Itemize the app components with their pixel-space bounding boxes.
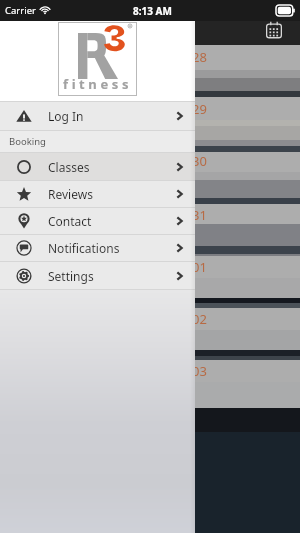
staticText: 29: [192, 100, 207, 118]
staticText: 31: [192, 206, 207, 224]
staticText: Contact: [48, 213, 92, 229]
staticText: Carrier: [5, 4, 36, 17]
button[interactable]: Notifications: [0, 235, 195, 261]
button[interactable]: Log In: [0, 102, 195, 130]
staticText: Reviews: [48, 186, 93, 202]
staticText: Log In: [48, 108, 84, 124]
button[interactable]: Settings: [0, 262, 195, 289]
staticText: 28: [192, 48, 207, 66]
staticText: 30: [192, 152, 207, 170]
button[interactable]: Reviews: [0, 181, 195, 207]
staticText: Booking: [9, 135, 46, 148]
staticText: Settings: [48, 268, 94, 284]
staticText: 03: [192, 362, 207, 380]
button[interactable]: Calendar: [256, 14, 292, 45]
staticText: Classes: [48, 159, 90, 175]
staticText: 02: [192, 310, 207, 328]
staticText: fitness: [63, 75, 133, 93]
staticText: 8:13 AM: [133, 4, 172, 18]
staticText: Notifications: [48, 240, 120, 256]
button[interactable]: Classes: [0, 153, 195, 180]
button[interactable]: Contact: [0, 208, 195, 234]
staticText: 01: [192, 258, 207, 276]
